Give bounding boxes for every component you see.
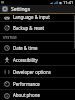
button[interactable]: Language & input <box>0 14 75 21</box>
button[interactable]: About phone <box>0 90 75 100</box>
staticText: SYSTEM <box>3 35 17 40</box>
staticText: Accessibility <box>13 57 38 63</box>
staticText: Backup & reset <box>13 25 45 31</box>
button[interactable]: Developer options <box>0 66 75 77</box>
button[interactable]: Settings <box>0 5 75 13</box>
staticText: Performance <box>13 81 40 87</box>
staticText: Settings <box>11 6 31 13</box>
button[interactable]: Accessibility <box>0 54 75 65</box>
staticText: Developer options <box>13 69 51 75</box>
button[interactable]: Performance <box>0 78 75 89</box>
button[interactable]: Backup & reset <box>0 22 75 33</box>
staticText: Date & time <box>13 45 38 51</box>
button[interactable]: Date & time <box>0 42 75 53</box>
staticText: Language & input <box>13 14 50 20</box>
staticText: About phone <box>13 92 40 98</box>
staticText: 11:41 <box>63 0 74 5</box>
